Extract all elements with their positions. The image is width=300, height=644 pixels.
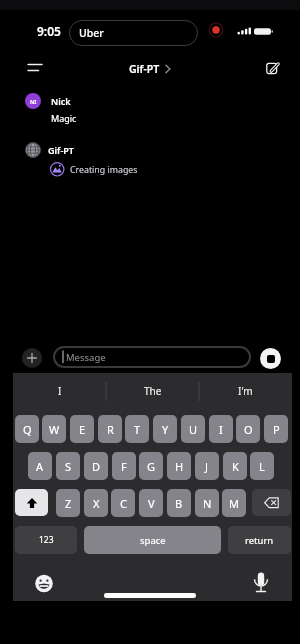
button[interactable]: O: [236, 415, 260, 443]
button[interactable]: S: [56, 452, 80, 480]
button[interactable]: F: [112, 452, 136, 480]
button[interactable]: E: [70, 415, 94, 443]
button[interactable]: C: [111, 489, 135, 517]
button[interactable]: [252, 489, 291, 516]
button[interactable]: G: [139, 452, 163, 480]
staticText: N: [203, 496, 212, 511]
staticText: K: [232, 459, 239, 474]
button[interactable]: [15, 489, 48, 516]
button[interactable]: D: [84, 452, 108, 480]
staticText: P: [273, 422, 280, 437]
staticText: H: [175, 459, 184, 474]
button[interactable]: [249, 568, 273, 596]
button[interactable]: Uber: [69, 20, 198, 46]
button[interactable]: P: [264, 415, 288, 443]
staticText: L: [259, 459, 265, 474]
staticText: U: [189, 422, 198, 437]
staticText: D: [92, 459, 101, 474]
button[interactable]: U: [181, 415, 205, 443]
button[interactable]: 123: [15, 526, 77, 554]
staticText: G: [147, 459, 156, 474]
staticText: space: [140, 534, 166, 547]
staticText: The: [144, 384, 162, 398]
staticText: F: [121, 459, 127, 474]
button[interactable]: A: [28, 452, 52, 480]
button[interactable]: M: [222, 489, 246, 517]
staticText: M: [229, 496, 239, 511]
staticText: I: [58, 384, 62, 398]
staticText: S: [65, 459, 72, 474]
staticText: B: [175, 496, 183, 511]
button[interactable]: [260, 348, 281, 369]
staticText: V: [148, 496, 155, 511]
staticText: Z: [65, 496, 72, 511]
button[interactable]: J: [195, 452, 219, 480]
button[interactable]: [18, 54, 50, 82]
button[interactable]: [31, 570, 57, 596]
button[interactable]: Y: [153, 415, 177, 443]
staticText: I: [219, 422, 223, 437]
button[interactable]: T: [125, 415, 149, 443]
button[interactable]: I'm: [199, 378, 292, 404]
staticText: Gif-PT: [48, 144, 74, 156]
button[interactable]: X: [84, 489, 108, 517]
staticText: Creating images: [70, 164, 138, 176]
button[interactable]: N: [195, 489, 219, 517]
button[interactable]: Q: [15, 415, 39, 443]
staticText: 123: [39, 534, 54, 546]
button[interactable]: [22, 348, 42, 368]
button[interactable]: W: [42, 415, 66, 443]
button[interactable]: return: [228, 526, 291, 554]
staticText: Magic: [51, 112, 77, 124]
staticText: Q: [23, 422, 32, 437]
staticText: Uber: [79, 26, 104, 40]
button[interactable]: space: [84, 526, 221, 554]
staticText: O: [244, 422, 253, 437]
button[interactable]: K: [223, 452, 247, 480]
button[interactable]: Z: [56, 489, 80, 517]
button[interactable]: H: [167, 452, 191, 480]
staticText: J: [205, 459, 209, 474]
staticText: Gif-PT: [129, 62, 160, 76]
staticText: Y: [162, 422, 169, 437]
button[interactable]: B: [167, 489, 191, 517]
staticText: A: [36, 459, 44, 474]
staticText: Message: [66, 351, 106, 364]
button[interactable]: The: [106, 378, 199, 404]
staticText: 9:05: [37, 23, 61, 39]
staticText: I'm: [238, 384, 253, 398]
button[interactable]: I: [13, 378, 106, 404]
staticText: E: [79, 422, 86, 437]
staticText: T: [134, 422, 141, 437]
staticText: Nick: [51, 95, 71, 107]
staticText: R: [107, 422, 114, 437]
button[interactable]: NI: [0, 88, 300, 128]
button[interactable]: Gif-PT: [100, 56, 200, 82]
button[interactable]: Gif-PT: [0, 138, 300, 180]
staticText: X: [93, 496, 100, 511]
button[interactable]: I: [209, 415, 233, 443]
button[interactable]: [255, 53, 289, 83]
staticText: W: [49, 422, 60, 437]
staticText: return: [245, 534, 274, 547]
staticText: C: [120, 496, 127, 511]
button[interactable]: Message: [53, 346, 251, 368]
staticText: NI: [30, 98, 37, 105]
button[interactable]: R: [98, 415, 122, 443]
button[interactable]: L: [250, 452, 274, 480]
button[interactable]: V: [139, 489, 163, 517]
